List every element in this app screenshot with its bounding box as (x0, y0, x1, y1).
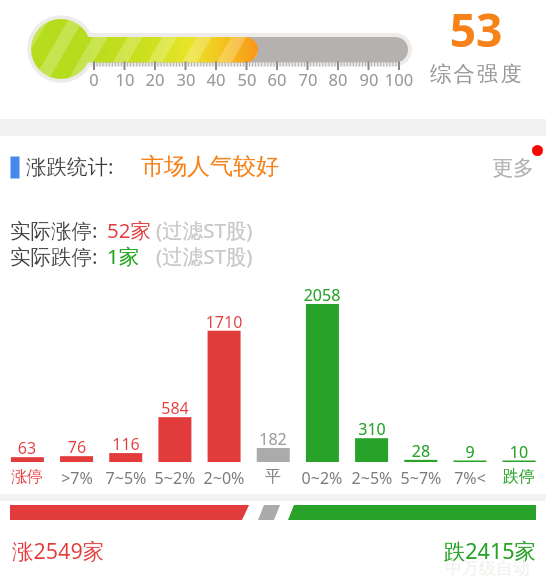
staticText: 实际涨停: (10, 216, 98, 244)
staticText: 1710 (199, 311, 249, 333)
staticText: 1家 (107, 242, 140, 270)
staticText: 60 (257, 68, 297, 90)
staticText: 20 (135, 68, 175, 90)
staticText: 52家 (107, 216, 151, 244)
staticText: 5~7% (396, 467, 446, 489)
staticText: (过滤ST股) (156, 242, 253, 270)
staticText: 中万级自动 (445, 558, 530, 579)
staticText: 市场人气较好 (141, 152, 279, 181)
staticText: 综合强度 (420, 61, 534, 87)
staticText: 2058 (297, 284, 347, 306)
staticText: 跌2415家 (416, 536, 536, 565)
staticText: 116 (101, 433, 151, 455)
staticText: 0~2% (297, 467, 347, 489)
staticText: 182 (248, 428, 298, 450)
staticText: 76 (52, 436, 102, 458)
staticText: 584 (150, 397, 200, 419)
staticText: 0 (74, 68, 114, 90)
staticText: 53 (420, 0, 532, 61)
staticText: 7%< (445, 467, 495, 489)
staticText: 10 (494, 441, 544, 463)
button[interactable]: 更多 (492, 155, 534, 181)
staticText: 80 (318, 68, 358, 90)
staticText: 7~5% (101, 467, 151, 489)
staticText: 实际跌停: (10, 242, 98, 270)
staticText: (过滤ST股) (156, 216, 253, 244)
staticText: 90 (349, 68, 389, 90)
staticText: 2~0% (199, 467, 249, 489)
staticText: 63 (2, 437, 52, 459)
staticText: 70 (288, 68, 328, 90)
staticText: 310 (347, 418, 397, 440)
staticText: >7% (52, 467, 102, 489)
staticText: 5~2% (150, 467, 200, 489)
staticText: 40 (196, 68, 236, 90)
staticText: 10 (105, 68, 145, 90)
staticText: 跌停 (494, 467, 544, 487)
staticText: 2~5% (347, 467, 397, 489)
staticText: 100 (379, 68, 419, 90)
staticText: 涨2549家 (12, 536, 105, 565)
staticText: 9 (445, 441, 495, 463)
staticText: 涨停 (2, 467, 52, 487)
staticText: 50 (227, 68, 267, 90)
staticText: 平 (248, 467, 298, 487)
staticText: 30 (166, 68, 206, 90)
staticText: 涨跌统计: (26, 152, 114, 180)
staticText: 28 (396, 440, 446, 462)
